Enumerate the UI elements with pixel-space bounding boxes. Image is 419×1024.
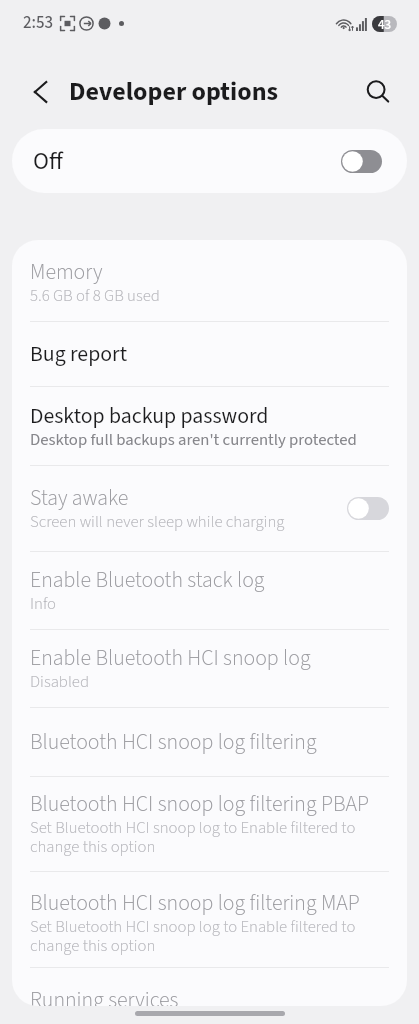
staticText: Screen will never sleep while charging [30,513,285,532]
button[interactable]: Toggle [341,150,382,173]
button[interactable]: Search [357,70,401,114]
staticText: Set Bluetooth HCI snoop log to Enable fi… [30,819,389,857]
button[interactable]: Bug report [12,322,407,386]
staticText: Disabled [30,673,89,692]
staticText: Off [33,144,63,178]
staticText: Bug report [30,345,128,367]
button[interactable]: Stay awake [12,466,407,551]
staticText: Running services [30,991,179,1006]
staticText: Set Bluetooth HCI snoop log to Enable fi… [30,918,389,956]
staticText: Developer options [69,77,357,109]
button[interactable]: Bluetooth HCI snoop log filtering MAP [12,872,407,967]
button[interactable]: Off [12,129,407,193]
staticText: Stay awake [30,489,129,511]
staticText: Memory [30,263,103,285]
staticText: Desktop full backups aren't currently pr… [30,431,357,450]
button[interactable]: Enable Bluetooth HCI snoop log [12,630,407,707]
button[interactable]: Bluetooth HCI snoop log filtering PBAP [12,777,407,871]
staticText: Bluetooth HCI snoop log filtering [30,733,317,755]
staticText: Enable Bluetooth HCI snoop log [30,649,311,671]
staticText: Enable Bluetooth stack log [30,571,265,593]
staticText: Desktop backup password [30,407,269,429]
staticText: 43 [378,16,392,32]
staticText: Bluetooth HCI snoop log filtering PBAP [30,795,369,817]
button[interactable]: Desktop backup password [12,387,407,465]
staticText: 2:53 [23,13,54,34]
button[interactable]: Memory [12,240,407,321]
staticText: 5.6 GB of 8 GB used [30,287,160,306]
staticText: Info [30,595,57,614]
button[interactable]: Enable Bluetooth stack log [12,552,407,629]
staticText: Bluetooth HCI snoop log filtering MAP [30,894,360,916]
button[interactable]: Running services [12,968,407,1006]
button[interactable]: Back [19,70,63,114]
button[interactable]: Toggle [347,497,389,520]
button[interactable]: Bluetooth HCI snoop log filtering [12,708,407,776]
